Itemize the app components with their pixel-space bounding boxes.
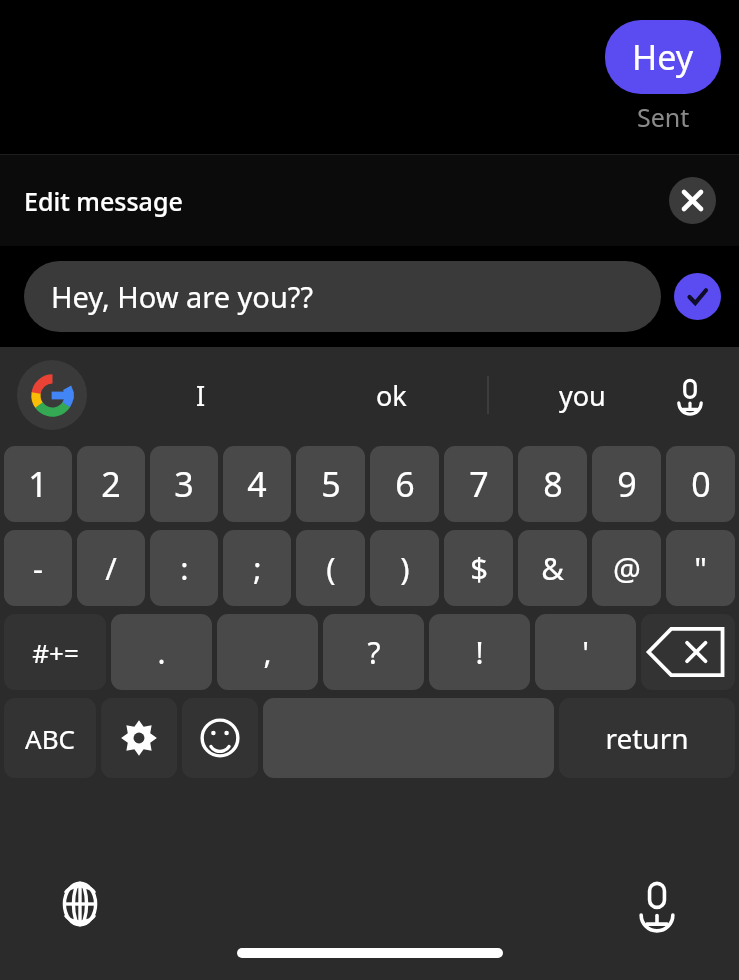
button[interactable]: Emoji (182, 698, 258, 778)
staticText: 7 (469, 461, 489, 507)
button[interactable]: ok (354, 359, 428, 431)
button[interactable]: Google (17, 360, 87, 430)
staticText: Hey, How are you?? (51, 277, 313, 316)
button[interactable]: Close (669, 177, 716, 224)
button[interactable]: Voice input (659, 364, 721, 426)
staticText: Edit message (24, 184, 183, 218)
button[interactable]: : (150, 530, 218, 606)
staticText: #+= (32, 635, 79, 670)
staticText: ( (326, 547, 336, 589)
button[interactable]: Confirm edit (674, 273, 721, 320)
staticText: 2 (101, 461, 121, 507)
button[interactable]: ' (535, 614, 636, 690)
button[interactable]: 4 (223, 446, 291, 522)
staticText: return (605, 719, 689, 757)
button[interactable]: Change language (49, 873, 111, 935)
button[interactable]: Voice typing (626, 873, 688, 935)
staticText: ; (253, 547, 262, 589)
staticText: @ (613, 547, 641, 589)
button[interactable]: " (666, 530, 735, 606)
button[interactable]: @ (592, 530, 661, 606)
button[interactable]: ) (370, 530, 439, 606)
staticText: ? (367, 632, 381, 673)
button[interactable]: 7 (444, 446, 513, 522)
staticText: 5 (321, 461, 341, 507)
button[interactable]: Backspace (641, 614, 735, 690)
button[interactable]: Keyboard settings (101, 698, 177, 778)
button[interactable]: #+= (4, 614, 106, 690)
staticText: 9 (617, 461, 637, 507)
staticText: 4 (247, 461, 267, 507)
button[interactable]: & (518, 530, 587, 606)
button[interactable]: - (4, 530, 72, 606)
staticText: 6 (395, 461, 415, 507)
button[interactable]: . (111, 614, 212, 690)
button[interactable]: 3 (150, 446, 218, 522)
button[interactable]: Hey (605, 20, 721, 94)
staticText: & (541, 547, 564, 589)
button[interactable]: , (217, 614, 318, 690)
staticText: 3 (174, 461, 194, 507)
staticText: - (33, 547, 43, 589)
staticText: ABC (25, 721, 75, 756)
staticText: , (263, 632, 272, 673)
staticText: Sent (637, 100, 690, 134)
button[interactable]: ( (296, 530, 365, 606)
button[interactable]: I (172, 359, 230, 431)
staticText: ! (475, 632, 484, 673)
button[interactable]: ! (429, 614, 530, 690)
staticText: : (180, 547, 189, 589)
staticText: I (196, 377, 206, 414)
staticText: ) (400, 547, 410, 589)
button[interactable]: you (543, 359, 621, 431)
button[interactable]: 2 (77, 446, 145, 522)
button[interactable]: ? (323, 614, 424, 690)
button[interactable]: 1 (4, 446, 72, 522)
button[interactable]: 8 (518, 446, 587, 522)
staticText: you (559, 377, 606, 414)
button[interactable]: 9 (592, 446, 661, 522)
staticText: / (105, 547, 117, 589)
staticText: " (694, 547, 707, 589)
button[interactable]: 0 (666, 446, 735, 522)
staticText: 1 (28, 461, 48, 507)
staticText: 8 (543, 461, 563, 507)
staticText: 0 (691, 461, 711, 507)
staticText: ok (376, 377, 407, 414)
staticText: $ (470, 547, 488, 589)
button[interactable]: 6 (370, 446, 439, 522)
button[interactable]: 5 (296, 446, 365, 522)
button[interactable]: ; (223, 530, 291, 606)
button[interactable]: Hey, How are you?? (24, 261, 661, 332)
staticText: ' (582, 632, 589, 673)
button[interactable]: / (77, 530, 145, 606)
staticText: Hey (632, 34, 694, 80)
staticText: . (157, 632, 166, 673)
button[interactable]: ABC (4, 698, 96, 778)
button[interactable]: return (559, 698, 735, 778)
button[interactable]: $ (444, 530, 513, 606)
